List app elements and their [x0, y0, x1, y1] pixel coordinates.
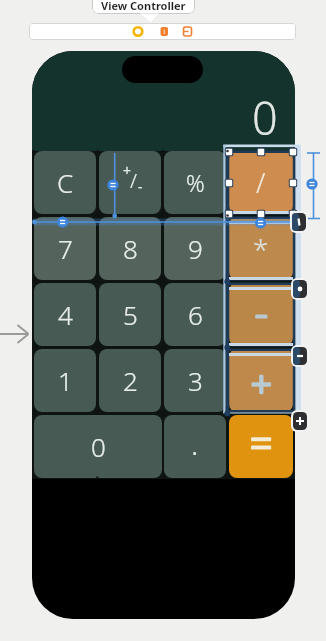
button[interactable]: +: [99, 151, 161, 214]
staticText: 8: [123, 231, 138, 266]
staticText: 3: [188, 363, 203, 398]
staticText: 6: [188, 297, 203, 332]
staticText: 0: [91, 429, 106, 464]
staticText: 2: [123, 363, 138, 398]
button[interactable]: 3: [164, 349, 226, 412]
staticText: *: [253, 230, 269, 268]
staticText: 9: [188, 231, 203, 266]
button[interactable]: [229, 283, 293, 346]
button[interactable]: 2: [99, 349, 161, 412]
button[interactable]: View Controller: [92, 0, 195, 14]
staticText: .: [191, 423, 199, 464]
staticText: /: [130, 167, 137, 194]
staticText: 0: [252, 87, 278, 148]
staticText: %: [186, 167, 205, 198]
button[interactable]: %: [164, 151, 226, 214]
staticText: /: [256, 164, 266, 201]
staticText: -: [138, 177, 143, 196]
button[interactable]: .: [164, 415, 226, 478]
button[interactable]: 1: [34, 349, 96, 412]
button[interactable]: 8: [99, 217, 161, 280]
button[interactable]: [229, 415, 293, 478]
button[interactable]: [29, 23, 296, 40]
button[interactable]: 4: [34, 283, 96, 346]
button[interactable]: 9: [164, 217, 226, 280]
staticText: 1: [58, 363, 73, 398]
button[interactable]: [229, 349, 293, 412]
button[interactable]: 5: [99, 283, 161, 346]
staticText: 7: [58, 231, 73, 266]
staticText: C: [57, 165, 74, 200]
button[interactable]: C: [34, 151, 96, 214]
staticText: View Controller: [101, 0, 186, 13]
button[interactable]: 7: [34, 217, 96, 280]
button[interactable]: 0: [34, 415, 162, 478]
staticText: 5: [123, 297, 138, 332]
button[interactable]: 6: [164, 283, 226, 346]
button[interactable]: *: [229, 217, 293, 280]
staticText: +: [123, 161, 132, 180]
button[interactable]: /: [229, 151, 293, 214]
staticText: 4: [58, 297, 73, 332]
